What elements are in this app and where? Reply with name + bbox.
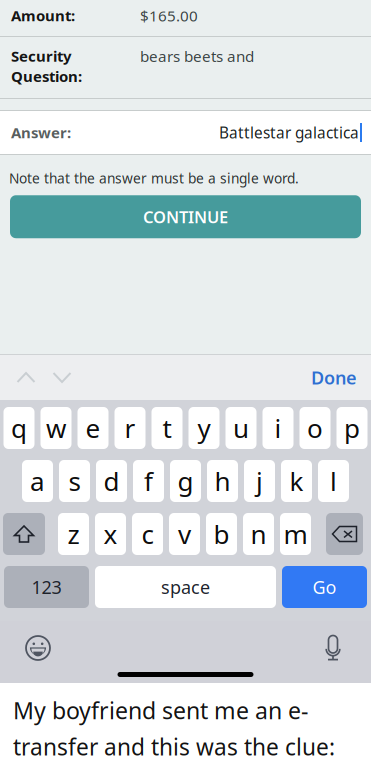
staticText: f <box>144 464 153 498</box>
button[interactable]: Next field <box>44 356 80 399</box>
button[interactable]: j <box>244 460 275 502</box>
button[interactable]: y <box>188 407 219 449</box>
button[interactable]: o <box>299 407 330 449</box>
button[interactable]: r <box>114 407 145 449</box>
button[interactable]: q <box>3 407 34 449</box>
button[interactable]: CONTINUE <box>10 195 361 238</box>
staticText: y <box>197 411 210 445</box>
staticText: j <box>256 464 263 498</box>
button[interactable]: i <box>262 407 293 449</box>
staticText: n <box>250 517 266 551</box>
button[interactable]: Shift <box>3 513 45 555</box>
button[interactable]: z <box>58 513 89 555</box>
button[interactable]: g <box>170 460 201 502</box>
button[interactable]: b <box>206 513 237 555</box>
button[interactable]: space <box>95 566 276 608</box>
staticText: p <box>344 411 360 445</box>
staticText: w <box>46 411 66 445</box>
button[interactable]: n <box>243 513 274 555</box>
staticText: t <box>162 411 171 445</box>
button[interactable]: Answer: <box>0 111 371 154</box>
staticText: a <box>30 464 45 498</box>
button[interactable]: w <box>40 407 71 449</box>
staticText: u <box>233 411 249 445</box>
staticText: CONTINUE <box>143 206 228 228</box>
staticText: m <box>283 517 307 551</box>
staticText: e <box>85 411 100 445</box>
staticText: Security <box>11 46 72 66</box>
staticText: g <box>177 464 193 498</box>
staticText: bears beets and <box>140 46 254 66</box>
button[interactable]: h <box>207 460 238 502</box>
button[interactable]: u <box>225 407 256 449</box>
button[interactable]: p <box>336 407 367 449</box>
staticText: s <box>68 464 80 498</box>
button[interactable]: a <box>22 460 53 502</box>
staticText: Amount: <box>11 5 75 25</box>
button[interactable]: x <box>95 513 126 555</box>
button[interactable]: v <box>169 513 200 555</box>
button[interactable]: Dictation <box>305 625 361 671</box>
staticText: transfer and this was the clue: <box>13 732 335 762</box>
button[interactable]: e <box>77 407 108 449</box>
staticText: l <box>330 464 337 498</box>
button[interactable]: d <box>96 460 127 502</box>
button[interactable]: Delete <box>326 513 363 555</box>
button[interactable]: c <box>132 513 163 555</box>
staticText: o <box>307 411 323 445</box>
staticText: space <box>161 575 210 599</box>
staticText: q <box>11 411 27 445</box>
staticText: k <box>289 464 303 498</box>
staticText: z <box>67 517 79 551</box>
staticText: b <box>213 517 229 551</box>
button[interactable]: l <box>318 460 349 502</box>
button[interactable]: Previous field <box>8 356 44 399</box>
button[interactable]: t <box>151 407 182 449</box>
button[interactable]: Emoji keyboard <box>10 625 66 671</box>
staticText: x <box>103 517 117 551</box>
button[interactable]: 123 <box>4 566 89 608</box>
staticText: 123 <box>31 575 61 599</box>
staticText: r <box>124 411 135 445</box>
staticText: Go <box>312 575 336 599</box>
staticText: v <box>178 517 191 551</box>
staticText: Done <box>311 365 357 389</box>
staticText: Note that the answer must be a single wo… <box>9 169 299 187</box>
staticText: My boyfriend sent me an e- <box>13 695 308 726</box>
button[interactable]: Go <box>282 566 367 608</box>
button[interactable]: Done <box>297 356 371 399</box>
staticText: Battlestar galactica <box>219 122 359 143</box>
staticText: h <box>214 464 230 498</box>
button[interactable]: s <box>59 460 90 502</box>
staticText: $165.00 <box>140 5 198 26</box>
staticText: c <box>141 517 153 551</box>
staticText: Question: <box>11 66 82 86</box>
button[interactable]: m <box>280 513 311 555</box>
button[interactable]: f <box>133 460 164 502</box>
staticText: i <box>274 411 281 445</box>
staticText: Answer: <box>11 123 71 142</box>
staticText: d <box>103 464 119 498</box>
button[interactable]: k <box>281 460 312 502</box>
